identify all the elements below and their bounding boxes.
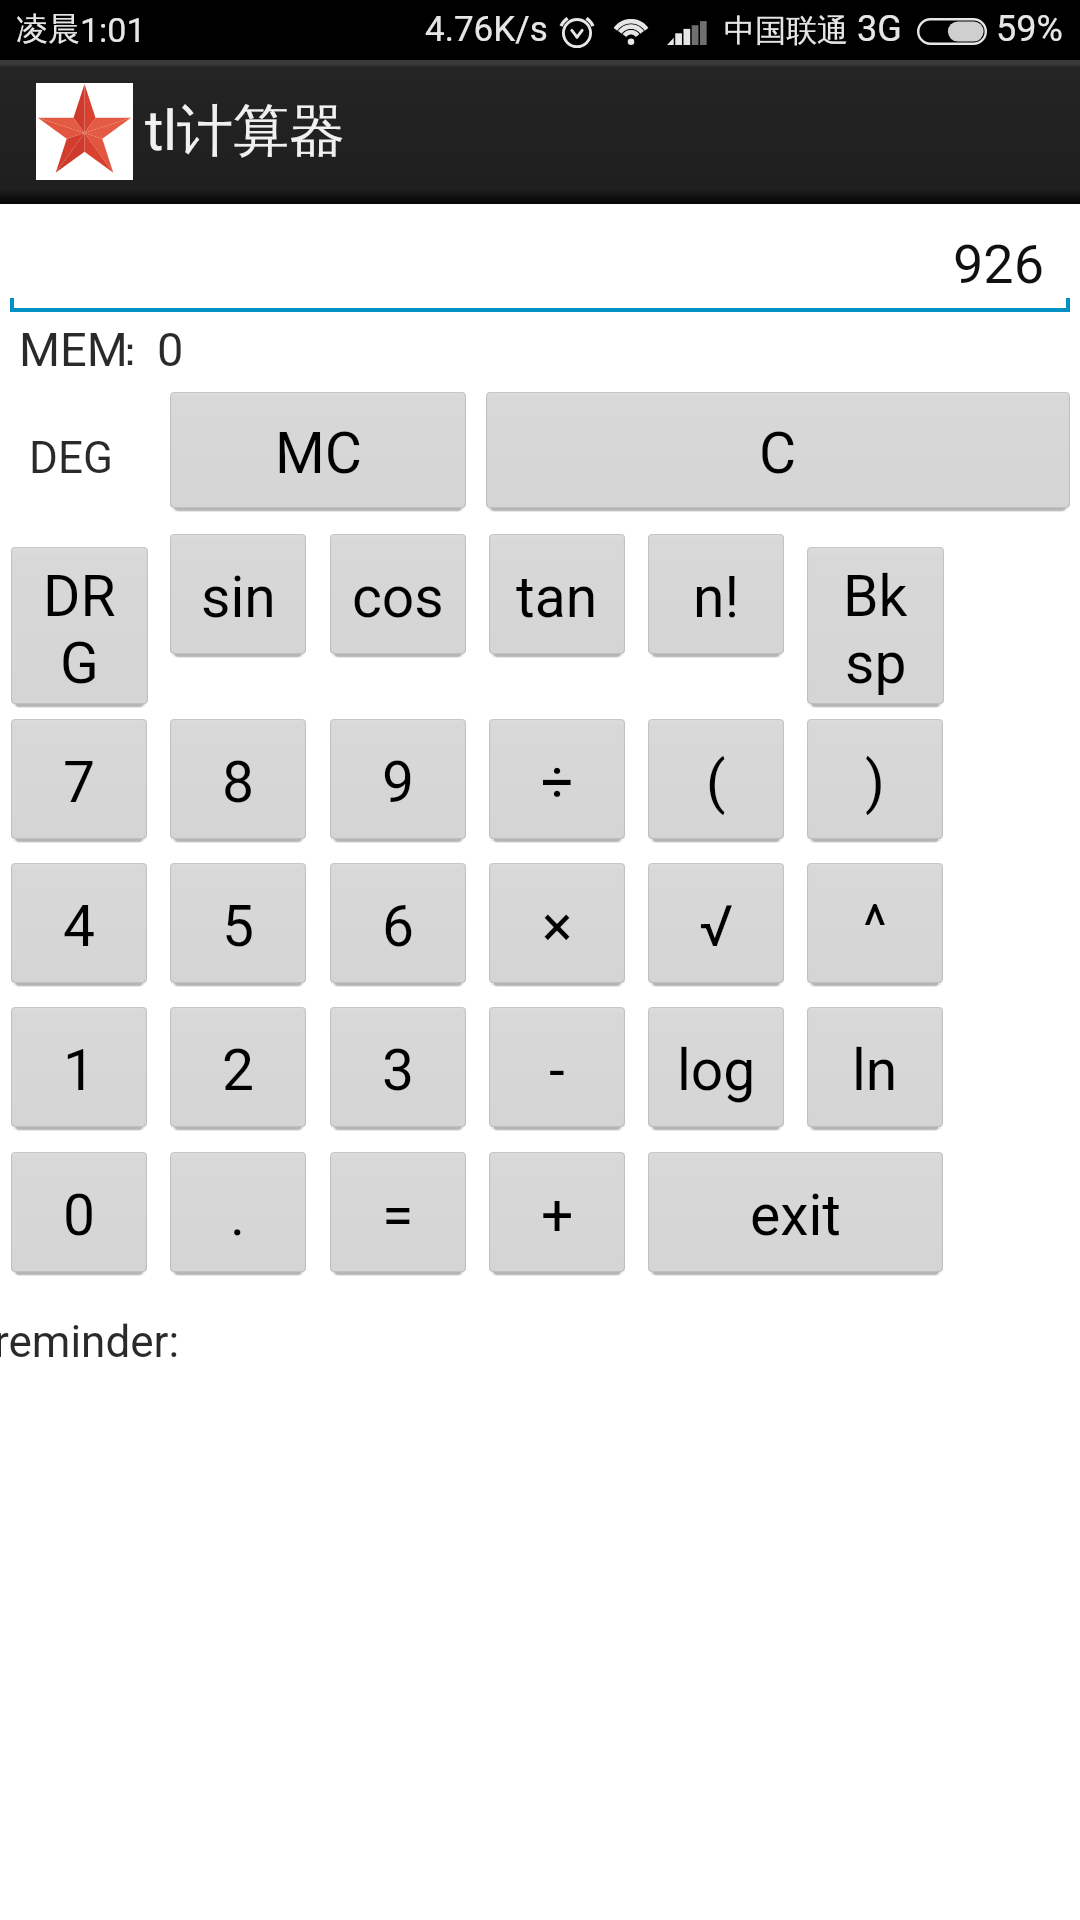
staticText: MEM <box>19 322 128 377</box>
button[interactable]: + <box>489 1152 625 1276</box>
staticText: 0 <box>63 1182 96 1249</box>
staticText: ( <box>706 749 726 816</box>
staticText: ) <box>865 749 885 816</box>
staticText: 5 <box>222 893 255 960</box>
button[interactable]: 6 <box>330 863 466 987</box>
button[interactable]: - <box>489 1007 625 1131</box>
staticText: . <box>230 1182 246 1249</box>
button[interactable]: cos <box>330 534 466 658</box>
staticText: ÷ <box>541 749 574 816</box>
staticText: n! <box>693 564 740 631</box>
staticText: 9 <box>382 749 415 816</box>
button[interactable]: √ <box>648 863 784 987</box>
button[interactable]: 1 <box>11 1007 147 1131</box>
staticText: DEG <box>29 432 113 484</box>
staticText: reminder: <box>0 1316 180 1368</box>
staticText: MC <box>275 420 362 487</box>
button[interactable]: sin <box>170 534 306 658</box>
staticText: 2 <box>222 1037 255 1104</box>
staticText: × <box>542 893 573 960</box>
button[interactable]: 9 <box>330 719 466 843</box>
button[interactable]: 8 <box>170 719 306 843</box>
button[interactable]: Bk <box>807 547 944 708</box>
staticText: 6 <box>382 893 415 960</box>
button[interactable]: = <box>330 1152 466 1276</box>
staticText: exit <box>750 1182 842 1249</box>
staticText: 4.76K/s <box>425 9 548 50</box>
button[interactable]: n! <box>648 534 784 658</box>
button[interactable]: . <box>170 1152 306 1276</box>
button[interactable]: ) <box>807 719 943 843</box>
staticText: tl计算器 <box>145 96 345 167</box>
staticText: sin <box>201 564 276 631</box>
staticText: ： <box>110 326 150 376</box>
button[interactable]: 3 <box>330 1007 466 1131</box>
button[interactable]: log <box>648 1007 784 1131</box>
staticText: - <box>549 1037 565 1104</box>
button[interactable]: exit <box>648 1152 943 1276</box>
staticText: = <box>382 1182 414 1249</box>
staticText: C <box>759 420 797 487</box>
staticText: 0 <box>157 322 184 377</box>
button[interactable]: C <box>486 392 1070 512</box>
staticText: 1:01 <box>80 10 146 50</box>
staticText: ln <box>852 1037 898 1104</box>
button[interactable]: tan <box>489 534 625 658</box>
staticText: 3 <box>382 1037 415 1104</box>
button[interactable]: ln <box>807 1007 943 1131</box>
button[interactable]: × <box>489 863 625 987</box>
button[interactable]: 0 <box>11 1152 147 1276</box>
staticText: 3G <box>857 8 902 50</box>
staticText: sp <box>845 630 907 697</box>
staticText: cos <box>352 564 444 631</box>
staticText: 926 <box>0 233 1044 296</box>
button[interactable]: 5 <box>170 863 306 987</box>
button[interactable]: Expression input <box>0 207 1080 312</box>
button[interactable]: DR <box>11 547 148 708</box>
staticText: DR <box>43 563 116 630</box>
staticText: 1 <box>63 1037 96 1104</box>
staticText: + <box>541 1182 574 1249</box>
button[interactable]: ÷ <box>489 719 625 843</box>
button[interactable]: ( <box>648 719 784 843</box>
staticText: G <box>60 630 99 697</box>
button[interactable]: ^ <box>807 863 943 987</box>
button[interactable]: MC <box>170 392 466 512</box>
button[interactable]: 4 <box>11 863 147 987</box>
button[interactable]: 7 <box>11 719 147 843</box>
staticText: 59% <box>996 8 1063 50</box>
staticText: 4 <box>63 893 96 960</box>
staticText: Bk <box>843 563 908 630</box>
staticText: 凌晨 <box>16 9 80 49</box>
staticText: √ <box>699 893 733 960</box>
staticText: ^ <box>863 893 887 960</box>
staticText: log <box>677 1037 756 1104</box>
staticText: 8 <box>222 749 255 816</box>
button[interactable]: 2 <box>170 1007 306 1131</box>
staticText: 中国联通 <box>724 11 848 50</box>
staticText: tan <box>516 564 598 631</box>
staticText: 7 <box>63 749 96 816</box>
